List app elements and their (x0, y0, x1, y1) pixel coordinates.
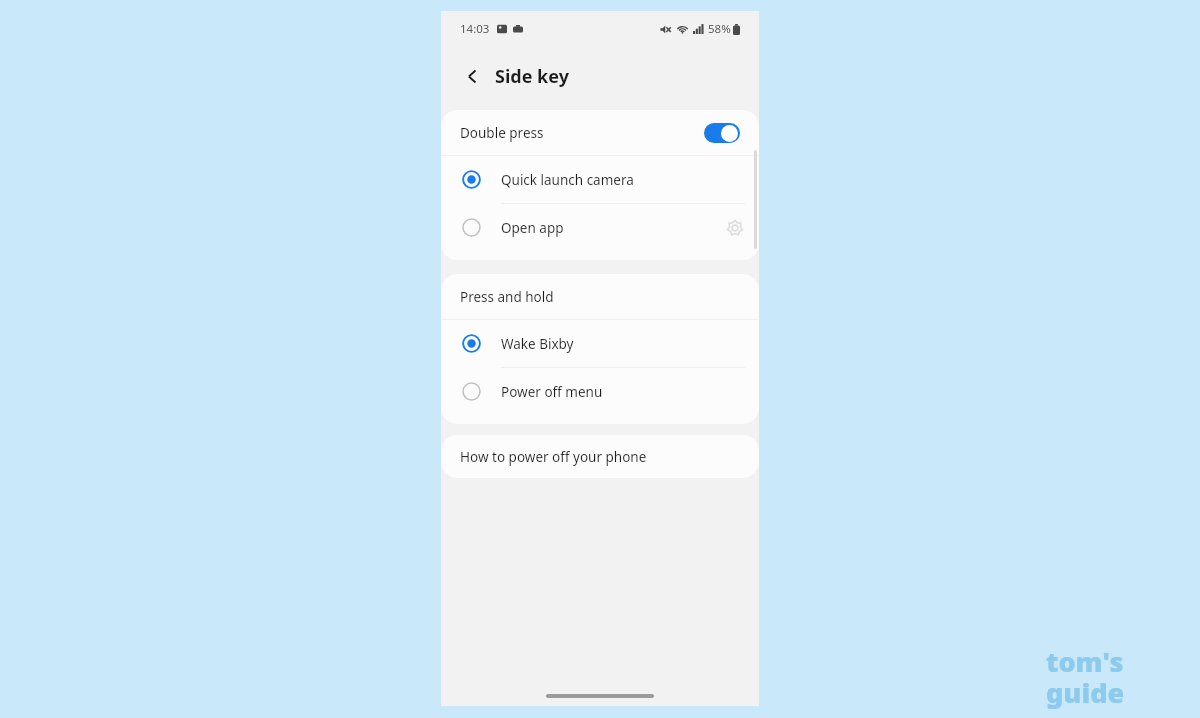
button[interactable]: Wake Bixby (441, 320, 759, 367)
staticText: Quick launch camera (501, 171, 745, 189)
staticText: Side key (495, 64, 569, 89)
button[interactable]: Double press (441, 110, 759, 155)
button[interactable]: How to power off your phone (441, 435, 759, 478)
staticText: How to power off your phone (460, 448, 647, 466)
button[interactable]: Quick launch camera (441, 156, 759, 203)
button[interactable]: Power off menu (441, 368, 759, 415)
staticText: Double press (460, 124, 704, 142)
staticText: Wake Bixby (501, 335, 745, 353)
staticText: Power off menu (501, 383, 745, 401)
staticText: guide (1046, 674, 1125, 711)
staticText: tom's (1046, 643, 1124, 680)
staticText: Press and hold (460, 288, 554, 306)
staticText: 14:03 (460, 21, 490, 37)
staticText: 58% (708, 21, 731, 37)
button[interactable]: Open app (441, 204, 759, 251)
button[interactable]: App settings (716, 209, 754, 247)
button[interactable]: Back (459, 63, 485, 89)
staticText: Open app (501, 219, 716, 237)
